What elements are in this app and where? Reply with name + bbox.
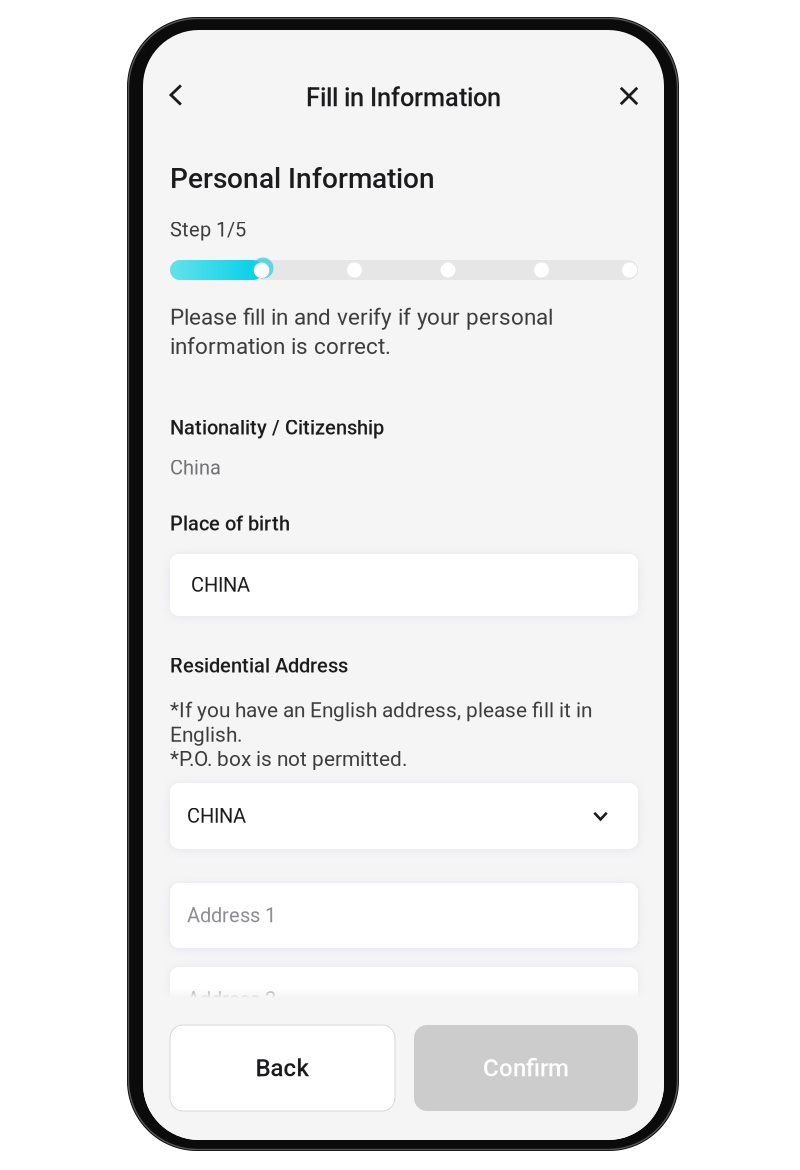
button[interactable]: Close [609,76,649,116]
staticText: Personal Information [170,162,435,195]
button[interactable]: Address 2 [170,967,638,1032]
button[interactable]: Back [170,1025,395,1111]
staticText: Back [255,1054,309,1082]
staticText: Step 1/5 [170,218,246,241]
button[interactable]: CHINA [170,783,638,849]
staticText: Address 2 [187,988,276,1011]
staticText: Place of birth [170,512,290,535]
staticText: Fill in Information [306,83,501,112]
button[interactable]: Confirm [414,1025,638,1111]
staticText: Nationality / Citizenship [170,416,384,439]
staticText: Residential Address [170,654,348,677]
button[interactable]: Back [156,73,196,117]
staticText: *If you have an English address, please … [170,698,592,771]
staticText: China [170,456,221,479]
button[interactable]: CHINA [170,554,638,616]
staticText: Confirm [483,1054,569,1082]
staticText: Address 1 [187,904,276,927]
staticText: Please fill in and verify if your person… [170,304,553,359]
staticText: CHINA [187,804,246,828]
button[interactable]: Address 1 [170,883,638,948]
staticText: CHINA [191,573,250,597]
